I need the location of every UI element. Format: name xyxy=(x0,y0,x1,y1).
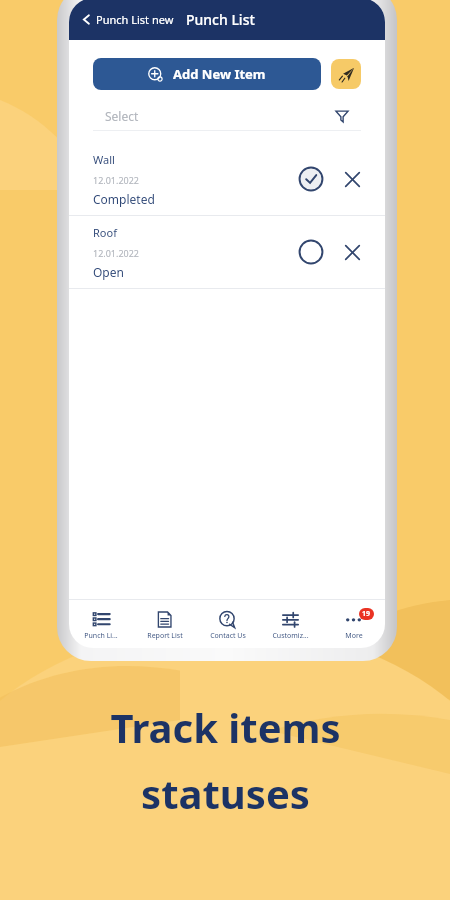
staticText: More xyxy=(345,631,363,641)
staticText: Punch List new xyxy=(96,12,174,27)
staticText: Track items xyxy=(110,700,341,754)
staticText: statuses xyxy=(141,766,310,820)
button[interactable]: Wall xyxy=(69,143,385,215)
staticText: Customiz... xyxy=(272,631,309,641)
button[interactable]: Add New Item xyxy=(93,58,321,90)
staticText: Open xyxy=(93,264,124,280)
staticText: Select xyxy=(105,108,139,124)
staticText: Wall xyxy=(93,152,115,167)
button[interactable]: Delete xyxy=(337,164,367,194)
button[interactable]: Punch Li... xyxy=(69,607,133,641)
staticText: 19 xyxy=(362,609,371,619)
staticText: Completed xyxy=(93,191,155,207)
button[interactable]: Open xyxy=(295,236,327,268)
button[interactable]: Punch List new xyxy=(69,8,178,31)
button[interactable]: Select xyxy=(93,102,361,130)
button[interactable]: Report List xyxy=(133,607,196,641)
button[interactable]: Roof xyxy=(69,216,385,288)
staticText: 12.01.2022 xyxy=(93,247,140,259)
staticText: Contact Us xyxy=(210,631,246,641)
staticText: Roof xyxy=(93,225,117,240)
button[interactable]: Completed xyxy=(295,163,327,195)
button[interactable]: 19 xyxy=(322,607,385,641)
staticText: Punch Li... xyxy=(84,631,118,641)
button[interactable]: Delete xyxy=(337,237,367,267)
button[interactable]: Customiz... xyxy=(259,607,322,641)
staticText: Add New Item xyxy=(173,65,266,83)
button[interactable]: Contact Us xyxy=(196,607,259,641)
staticText: 12.01.2022 xyxy=(93,174,140,186)
staticText: Report List xyxy=(147,631,183,641)
button[interactable]: Send xyxy=(331,59,361,89)
staticText: Punch List xyxy=(186,10,255,29)
